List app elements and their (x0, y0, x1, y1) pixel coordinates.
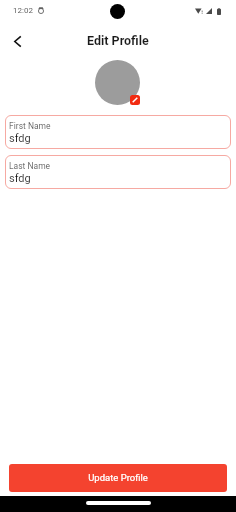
staticText: Edit Profile (87, 33, 149, 48)
staticText: Update Profile (88, 472, 148, 483)
staticText: sfdg (9, 132, 31, 145)
button[interactable]: Profile photo (95, 60, 140, 105)
button[interactable]: Back (5, 29, 29, 53)
button[interactable]: Update Profile (9, 464, 227, 492)
button[interactable]: First Name (5, 115, 231, 149)
staticText: First Name (9, 121, 51, 131)
staticText: sfdg (9, 172, 31, 185)
staticText: Last Name (9, 161, 51, 171)
button[interactable]: Change photo (130, 95, 140, 105)
staticText: 12:02 (13, 6, 33, 15)
button[interactable]: Last Name (5, 155, 231, 189)
